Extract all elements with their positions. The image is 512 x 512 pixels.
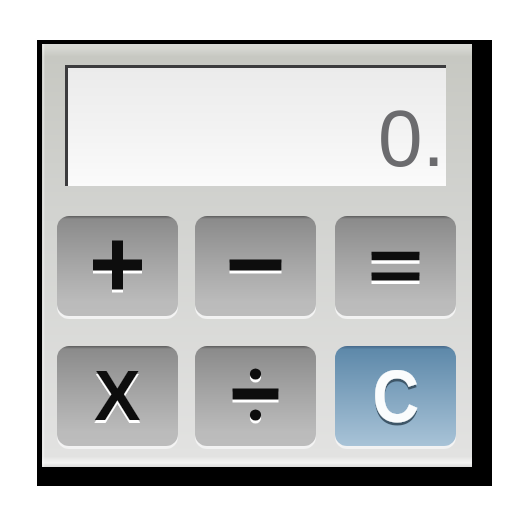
button[interactable]: Multiply	[57, 346, 178, 446]
staticText: C	[372, 355, 419, 438]
staticText: X	[94, 360, 141, 438]
button[interactable]: Clear	[335, 346, 456, 446]
staticText: C	[372, 358, 419, 441]
button[interactable]: Plus	[57, 216, 178, 316]
staticText: X	[94, 357, 141, 435]
button[interactable]: Divide	[195, 346, 316, 446]
button[interactable]: Minus	[195, 216, 316, 316]
button[interactable]: Equals	[335, 216, 456, 316]
staticText: 0.	[378, 94, 445, 183]
